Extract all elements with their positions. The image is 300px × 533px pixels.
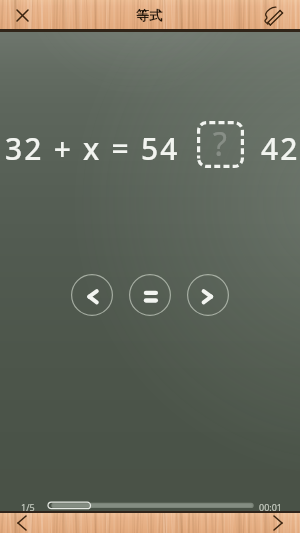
staticText: 1/5	[21, 501, 35, 513]
button[interactable]: Answer blank	[197, 121, 244, 168]
staticText: 42	[261, 128, 300, 169]
staticText: 32 + x = 54	[5, 128, 180, 169]
button[interactable]: Close	[0, 0, 42, 29]
button[interactable]: Edit	[258, 0, 300, 29]
button[interactable]: Equals	[129, 274, 171, 316]
button[interactable]: Back	[0, 513, 42, 533]
staticText: 00:01	[259, 501, 283, 513]
staticText: ?	[213, 122, 227, 166]
button[interactable]: Previous	[71, 274, 113, 316]
button[interactable]: Next	[187, 274, 229, 316]
staticText: 等式	[136, 7, 164, 23]
button[interactable]: Forward	[258, 513, 300, 533]
